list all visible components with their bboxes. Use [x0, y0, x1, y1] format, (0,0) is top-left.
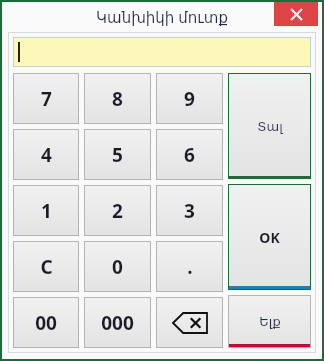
button[interactable]: Backspace — [156, 297, 223, 348]
staticText: 00 — [35, 310, 57, 336]
staticText: Տալ — [257, 119, 283, 134]
button[interactable]: 8 — [84, 73, 151, 124]
button[interactable]: 2 — [84, 185, 151, 236]
button[interactable]: 0 — [84, 241, 151, 292]
staticText: C — [40, 254, 53, 280]
staticText: Կանխիկի մուտք — [96, 7, 228, 27]
staticText: 6 — [184, 142, 195, 168]
button[interactable]: 00 — [13, 297, 79, 348]
button[interactable]: 000 — [84, 297, 151, 348]
button[interactable]: . — [156, 241, 223, 292]
staticText: 2 — [112, 198, 123, 224]
staticText: 000 — [101, 310, 134, 336]
staticText: 3 — [184, 198, 195, 224]
button[interactable]: 4 — [13, 129, 79, 180]
button[interactable]: 6 — [156, 129, 223, 180]
staticText: 5 — [112, 142, 123, 168]
button[interactable]: Close — [274, 2, 318, 26]
button[interactable]: Ելք — [228, 295, 311, 348]
staticText: Ելք — [259, 314, 281, 329]
button[interactable]: C — [13, 241, 79, 292]
button[interactable]: 9 — [156, 73, 223, 124]
staticText: 1 — [41, 198, 52, 224]
staticText: . — [187, 254, 193, 280]
staticText: 0 — [112, 254, 123, 280]
staticText: 9 — [184, 86, 195, 112]
staticText: 8 — [112, 86, 123, 112]
button[interactable]: 1 — [13, 185, 79, 236]
button[interactable]: Տալ — [228, 73, 311, 179]
button[interactable]: OK — [228, 184, 311, 290]
staticText: OK — [259, 228, 280, 247]
button[interactable]: 7 — [13, 73, 79, 124]
staticText: 4 — [41, 142, 52, 168]
button[interactable]: 3 — [156, 185, 223, 236]
button[interactable]: 5 — [84, 129, 151, 180]
button[interactable] — [13, 37, 311, 67]
staticText: 7 — [41, 86, 52, 112]
